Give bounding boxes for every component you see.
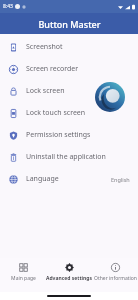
- button[interactable]: Main page: [0, 258, 46, 292]
- button[interactable]: Advanced settings: [46, 258, 92, 292]
- button[interactable]: Permission settings: [0, 124, 138, 146]
- staticText: 8:43: [3, 3, 13, 10]
- button[interactable]: Lock touch screen: [0, 102, 138, 124]
- staticText: Lock screen: [26, 86, 65, 96]
- staticText: Main page: [11, 275, 36, 282]
- button[interactable]: Uninstall the application: [0, 146, 138, 168]
- button[interactable]: Screenshot: [0, 36, 138, 58]
- staticText: English: [111, 176, 130, 183]
- staticText: Button Master: [38, 18, 101, 30]
- button[interactable]: Other information: [92, 258, 138, 292]
- staticText: Language: [26, 174, 59, 184]
- staticText: Permission settings: [26, 130, 91, 140]
- staticText: Other information: [94, 275, 137, 282]
- button[interactable]: Language: [0, 168, 138, 190]
- staticText: Advanced settings: [46, 275, 92, 282]
- staticText: Screenshot: [26, 42, 63, 52]
- staticText: Uninstall the application: [26, 152, 106, 162]
- staticText: Screen recorder: [26, 64, 79, 74]
- button[interactable]: Screen recorder: [0, 58, 138, 80]
- staticText: Lock touch screen: [26, 108, 86, 118]
- button[interactable]: Lock screen: [0, 80, 138, 102]
